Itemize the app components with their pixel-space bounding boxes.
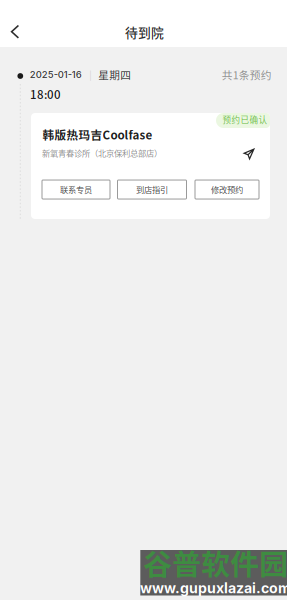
staticText: 待到院 xyxy=(125,23,164,41)
button[interactable]: 联系专员 xyxy=(42,180,110,199)
staticText: 到店指引 xyxy=(136,183,168,195)
staticText: 修改预约 xyxy=(211,183,243,195)
button[interactable]: Back xyxy=(2,17,28,46)
staticText: 星期四 xyxy=(98,67,131,82)
staticText: 预约已确认 xyxy=(222,113,267,126)
staticText: 共1条预约 xyxy=(222,67,272,82)
staticText: | xyxy=(89,68,92,81)
staticText: 2025-01-16 xyxy=(30,69,82,80)
button[interactable]: Navigate to clinic xyxy=(238,143,260,165)
staticText: 新氧青春诊所（北京保利总部店） xyxy=(42,147,162,159)
staticText: www.gupuxlazai.com xyxy=(140,579,287,596)
staticText: 韩版热玛吉Coolfase xyxy=(42,126,152,143)
button[interactable]: 到店指引 xyxy=(117,180,186,199)
staticText: 谷普软件园 xyxy=(143,542,287,583)
staticText: 18:00 xyxy=(30,86,61,102)
button[interactable]: 修改预约 xyxy=(195,180,259,199)
staticText: 联系专员 xyxy=(60,183,92,195)
